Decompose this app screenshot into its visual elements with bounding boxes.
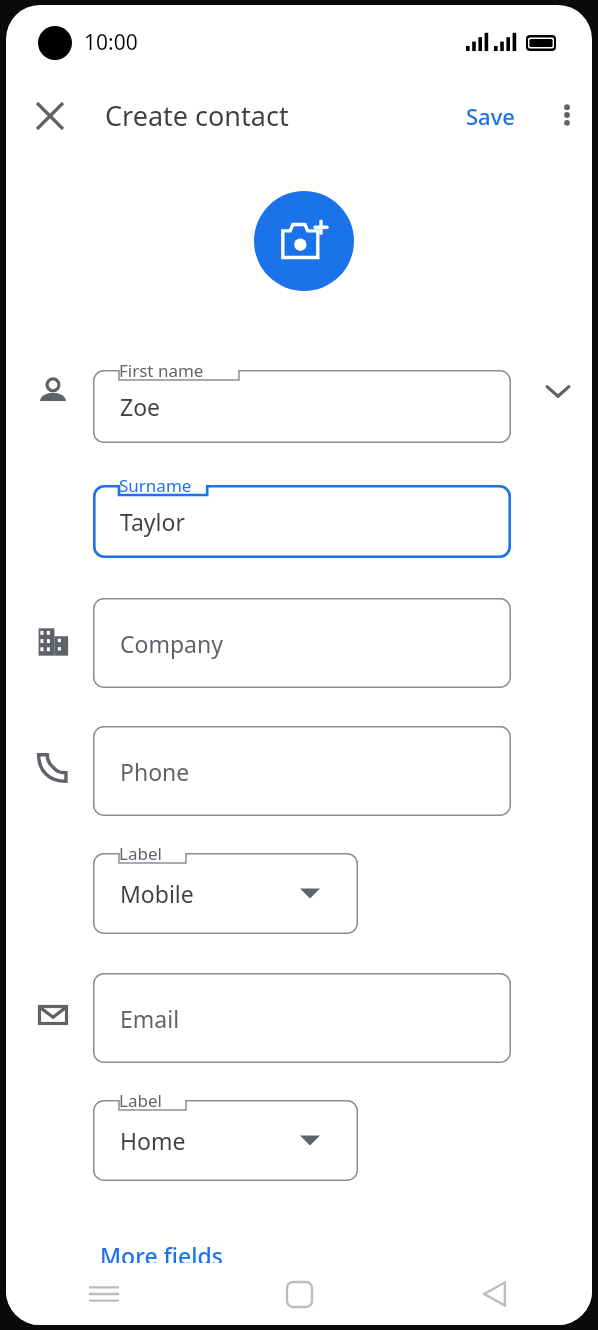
button[interactable]: Close bbox=[24, 90, 76, 142]
staticText: Phone bbox=[120, 756, 190, 787]
button[interactable]: First name bbox=[93, 355, 511, 443]
button[interactable]: Company bbox=[93, 598, 511, 688]
staticText: More fields bbox=[100, 1240, 223, 1271]
staticText: Label bbox=[119, 842, 162, 865]
button[interactable]: More fields bbox=[86, 1233, 237, 1277]
button[interactable]: Email bbox=[93, 973, 511, 1063]
button[interactable]: Surname bbox=[93, 470, 511, 558]
button[interactable]: Recent apps bbox=[6, 1263, 202, 1325]
button[interactable]: Expand name fields bbox=[534, 367, 582, 415]
staticText: Company bbox=[120, 628, 223, 659]
staticText: Mobile bbox=[120, 878, 194, 909]
staticText: 10:00 bbox=[84, 28, 138, 57]
staticText: Label bbox=[119, 1089, 162, 1112]
staticText: First name bbox=[119, 359, 204, 382]
staticText: Surname bbox=[119, 474, 192, 497]
button[interactable]: Label bbox=[93, 838, 358, 934]
button[interactable]: Home bbox=[202, 1263, 397, 1325]
staticText: Save bbox=[466, 101, 515, 131]
button[interactable]: Save bbox=[454, 91, 527, 141]
staticText: Email bbox=[120, 1003, 180, 1034]
button[interactable]: Back bbox=[397, 1263, 592, 1325]
staticText: Taylor bbox=[120, 506, 185, 537]
staticText: Create contact bbox=[105, 97, 289, 134]
button[interactable]: More options bbox=[542, 90, 592, 140]
button[interactable]: Phone bbox=[93, 726, 511, 816]
staticText: Zoe bbox=[120, 391, 161, 422]
button[interactable]: Label bbox=[93, 1085, 358, 1181]
button[interactable]: Add photo bbox=[254, 191, 354, 291]
staticText: Home bbox=[120, 1125, 186, 1156]
